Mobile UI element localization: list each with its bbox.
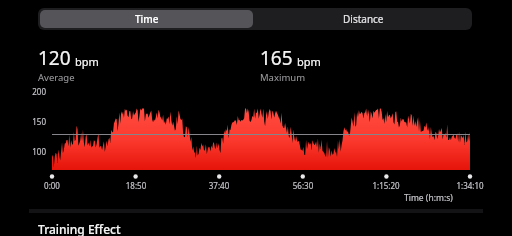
staticText: 1:34:10: [444, 180, 496, 191]
staticText: Distance: [343, 12, 384, 26]
staticText: Maximum: [260, 71, 306, 84]
staticText: 100: [22, 146, 46, 157]
staticText: 165: [260, 45, 293, 71]
staticText: 56:30: [277, 180, 329, 191]
staticText: Time (h:m:s): [404, 192, 453, 204]
staticText: Average: [38, 71, 75, 84]
staticText: 120: [38, 45, 71, 71]
staticText: 150: [22, 116, 46, 127]
staticText: 1:15:20: [360, 180, 412, 191]
button[interactable]: Distance: [255, 8, 472, 30]
staticText: 18:50: [110, 180, 162, 191]
staticText: 0:00: [26, 180, 78, 191]
other: Heart rate chart: [0, 0, 512, 236]
staticText: bpm: [75, 54, 99, 69]
staticText: 37:40: [193, 180, 245, 191]
staticText: bpm: [297, 54, 321, 69]
staticText: Training Effect: [38, 221, 121, 236]
staticText: Time: [135, 12, 159, 26]
staticText: 200: [22, 86, 46, 97]
button[interactable]: Time: [40, 10, 253, 28]
